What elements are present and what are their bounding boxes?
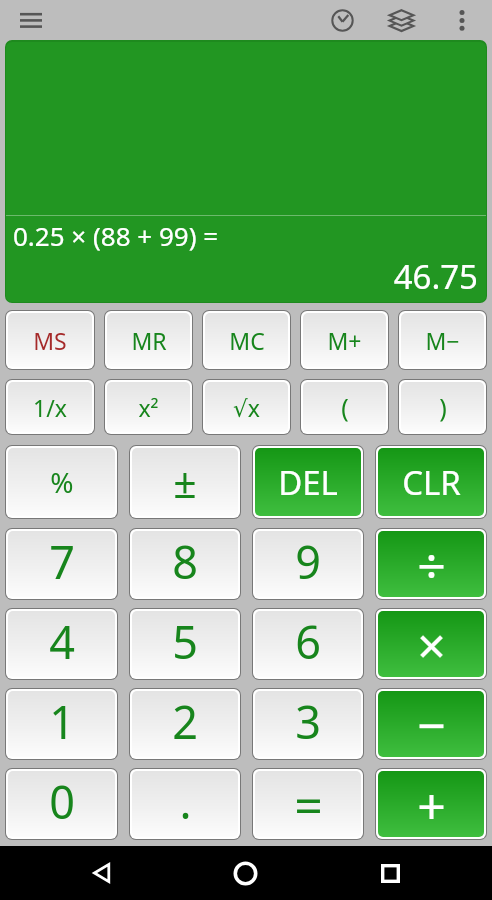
staticText: 0: [49, 771, 75, 830]
staticText: ÷: [417, 531, 446, 591]
button[interactable]: History: [313, 0, 372, 40]
button[interactable]: MC: [205, 313, 288, 367]
button[interactable]: .: [132, 771, 238, 837]
staticText: ×: [417, 611, 446, 671]
button[interactable]: 7: [8, 531, 115, 597]
staticText: M+: [327, 325, 362, 356]
staticText: 0.25 × (88 + 99) =: [13, 218, 219, 253]
staticText: x²: [138, 392, 159, 423]
button[interactable]: 8: [132, 531, 238, 597]
staticText: 9: [295, 531, 321, 590]
staticText: =: [294, 771, 323, 830]
button[interactable]: M+: [303, 313, 386, 367]
button[interactable]: ÷: [378, 531, 484, 597]
button[interactable]: 0: [8, 771, 115, 837]
staticText: (: [341, 390, 349, 424]
button[interactable]: 2: [132, 691, 238, 757]
staticText: 1/x: [33, 392, 67, 423]
button[interactable]: −: [378, 691, 484, 757]
staticText: 8: [172, 531, 198, 590]
button[interactable]: M−: [401, 313, 484, 367]
staticText: 7: [49, 531, 75, 590]
button[interactable]: ): [401, 382, 484, 432]
staticText: −: [417, 691, 446, 751]
button[interactable]: More options: [431, 0, 492, 40]
staticText: 1: [49, 691, 75, 750]
staticText: 3: [295, 691, 321, 750]
staticText: 46.75: [6, 254, 478, 299]
button[interactable]: CLR: [378, 448, 484, 516]
button[interactable]: 9: [255, 531, 361, 597]
staticText: DEL: [278, 460, 338, 505]
button[interactable]: 5: [132, 611, 238, 677]
button[interactable]: √x: [205, 382, 288, 432]
staticText: 2: [172, 691, 198, 750]
button[interactable]: Layers: [372, 0, 431, 40]
staticText: +: [417, 771, 446, 831]
staticText: M−: [425, 325, 460, 356]
button[interactable]: Back: [0, 846, 202, 900]
staticText: MR: [131, 325, 167, 356]
button[interactable]: =: [255, 771, 361, 837]
button[interactable]: 4: [8, 611, 115, 677]
button[interactable]: +: [378, 771, 484, 837]
staticText: ): [439, 390, 447, 424]
button[interactable]: MS: [8, 313, 92, 367]
button[interactable]: DEL: [255, 448, 361, 516]
staticText: %: [50, 463, 74, 501]
staticText: CLR: [402, 460, 461, 505]
button[interactable]: 3: [255, 691, 361, 757]
button[interactable]: x²: [107, 382, 190, 432]
staticText: 6: [295, 611, 321, 670]
button[interactable]: 6: [255, 611, 361, 677]
button[interactable]: 1: [8, 691, 115, 757]
staticText: 4: [49, 611, 75, 670]
staticText: MS: [33, 325, 67, 356]
button[interactable]: ±: [132, 448, 238, 516]
button[interactable]: (: [303, 382, 386, 432]
staticText: .: [179, 771, 192, 830]
button[interactable]: Home: [202, 846, 289, 900]
button[interactable]: MR: [107, 313, 190, 367]
staticText: √x: [233, 392, 260, 423]
staticText: ±: [173, 454, 197, 510]
button[interactable]: ×: [378, 611, 484, 677]
button[interactable]: %: [8, 448, 115, 516]
staticText: 5: [172, 611, 198, 670]
button[interactable]: Menu: [0, 0, 62, 40]
staticText: MC: [229, 325, 265, 356]
button[interactable]: 1/x: [8, 382, 92, 432]
button[interactable]: Recents: [289, 846, 492, 900]
